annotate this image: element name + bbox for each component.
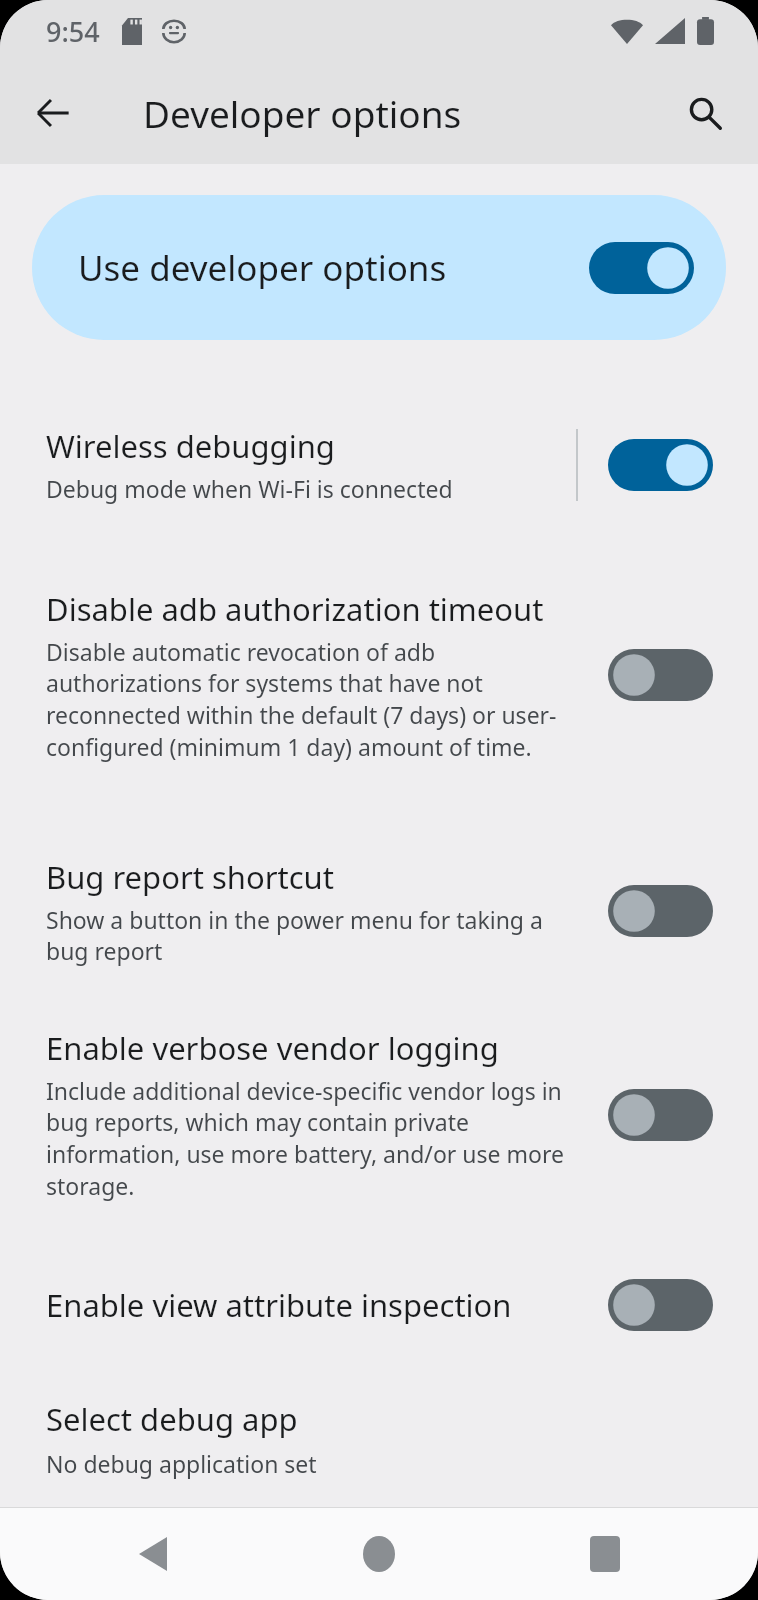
button[interactable]: Recent apps xyxy=(570,1519,640,1589)
staticText: Disable automatic revocation of adb auth… xyxy=(46,636,576,763)
staticText: No debug application set xyxy=(46,1448,317,1479)
staticText: Enable view attribute inspection xyxy=(46,1284,512,1326)
staticText: Use developer options xyxy=(78,244,447,292)
button[interactable]: Enable view attribute inspection xyxy=(0,1230,758,1380)
button[interactable]: Off xyxy=(608,885,713,937)
staticText: Debug mode when Wi-Fi is connected xyxy=(46,473,453,504)
button[interactable]: Disable adb authorization timeout xyxy=(0,527,758,823)
button[interactable]: Select debug app xyxy=(0,1380,758,1500)
button[interactable]: Enable verbose vendor logging xyxy=(0,999,758,1230)
staticText: Wireless debugging xyxy=(46,425,335,467)
staticText: Disable adb authorization timeout xyxy=(46,588,544,630)
button[interactable]: Bug report shortcut xyxy=(0,823,758,999)
staticText: Developer options xyxy=(143,88,462,138)
staticText: Bug report shortcut xyxy=(46,856,334,898)
staticText: Enable verbose vendor logging xyxy=(46,1027,499,1069)
staticText: 9:54 xyxy=(46,13,100,50)
button[interactable]: Search xyxy=(672,80,738,146)
button[interactable]: Back xyxy=(118,1519,188,1589)
button[interactable]: Off xyxy=(608,1089,713,1141)
button[interactable]: Use developer options xyxy=(32,195,726,340)
staticText: Select debug app xyxy=(46,1398,298,1440)
button[interactable]: Off xyxy=(608,649,713,701)
button[interactable]: Wireless debugging xyxy=(0,402,758,527)
button[interactable]: On xyxy=(589,242,694,294)
staticText: Include additional device-specific vendo… xyxy=(46,1075,576,1202)
button[interactable]: Back xyxy=(20,80,86,146)
button[interactable]: On xyxy=(608,439,713,491)
staticText: Show a button in the power menu for taki… xyxy=(46,904,576,967)
button[interactable]: Home xyxy=(344,1519,414,1589)
button[interactable]: Off xyxy=(608,1279,713,1331)
